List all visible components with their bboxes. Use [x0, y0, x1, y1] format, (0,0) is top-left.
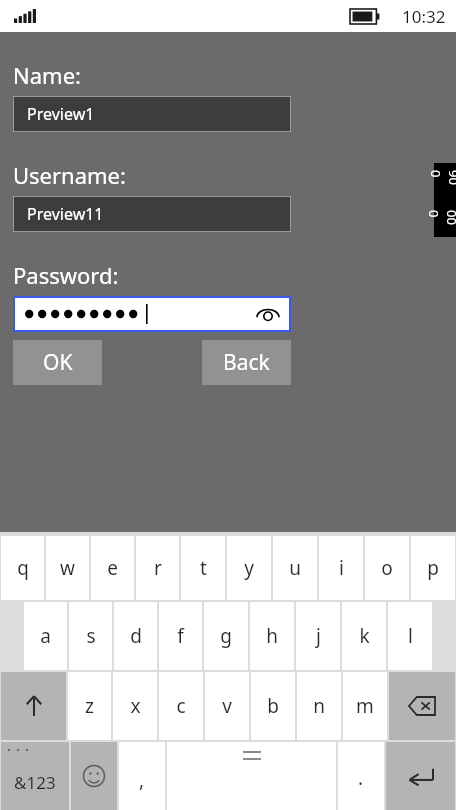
staticText: Username:	[13, 160, 126, 190]
button[interactable]: f	[159, 602, 202, 670]
staticText: x	[130, 693, 141, 719]
staticText: w	[60, 555, 75, 581]
button[interactable]: w	[46, 536, 89, 600]
button[interactable]: l	[388, 602, 432, 670]
staticText: m	[356, 693, 374, 719]
staticText: o	[381, 555, 393, 581]
staticText: 10:32	[402, 5, 446, 28]
staticText: d	[130, 623, 142, 649]
staticText: a	[40, 623, 51, 649]
button[interactable]: a	[24, 602, 67, 670]
staticText: f	[177, 623, 184, 649]
staticText: .	[358, 765, 364, 791]
staticText: ,	[139, 767, 145, 793]
button[interactable]: q	[1, 536, 44, 600]
button[interactable]: Show password	[15, 298, 289, 330]
button[interactable]: h	[250, 602, 294, 670]
staticText: z	[85, 693, 94, 719]
button[interactable]: s	[69, 602, 112, 670]
button[interactable]: &123	[1, 742, 69, 810]
staticText: i	[339, 555, 344, 581]
button[interactable]: Show password	[255, 301, 281, 327]
button[interactable]: Preview11	[14, 197, 290, 231]
button[interactable]: d	[114, 602, 157, 670]
staticText: v	[222, 693, 232, 719]
button[interactable]: n	[297, 672, 341, 740]
button[interactable]: OK	[13, 340, 102, 385]
button[interactable]: g	[204, 602, 248, 670]
button[interactable]: Back	[202, 340, 291, 385]
button[interactable]: j	[296, 602, 340, 670]
button[interactable]: c	[159, 672, 203, 740]
button[interactable]: Shift	[1, 672, 66, 740]
button[interactable]: Backspace	[389, 672, 455, 740]
button[interactable]: Space	[167, 742, 336, 810]
button[interactable]: m	[343, 672, 387, 740]
staticText: t	[200, 555, 207, 581]
button[interactable]: Emoji	[71, 742, 117, 810]
button[interactable]: x	[113, 672, 157, 740]
staticText: OK	[43, 348, 73, 377]
button[interactable]: Preview1	[14, 97, 290, 131]
staticText: g	[220, 623, 232, 649]
button[interactable]: y	[227, 536, 271, 600]
staticText: q	[17, 555, 29, 581]
button[interactable]: p	[411, 536, 455, 600]
staticText: &123	[14, 771, 56, 794]
staticText: Preview1	[27, 103, 95, 125]
staticText: Back	[223, 348, 270, 377]
staticText: e	[107, 555, 118, 581]
staticText: u	[289, 555, 301, 581]
staticText: r	[154, 555, 162, 581]
staticText: s	[86, 623, 96, 649]
button[interactable]: r	[136, 536, 179, 600]
staticText: b	[267, 693, 279, 719]
staticText: n	[313, 693, 325, 719]
button[interactable]: e	[91, 536, 134, 600]
button[interactable]: Enter	[386, 742, 455, 810]
staticText: y	[244, 555, 254, 581]
button[interactable]: o	[365, 536, 409, 600]
staticText: k	[359, 623, 370, 649]
staticText: Password:	[13, 260, 119, 290]
button[interactable]: u	[273, 536, 317, 600]
button[interactable]: i	[319, 536, 363, 600]
staticText: j	[316, 623, 321, 649]
staticText: 000	[429, 210, 456, 232]
button[interactable]: v	[205, 672, 249, 740]
staticText: l	[408, 623, 413, 649]
button[interactable]: .	[338, 742, 384, 810]
button[interactable]: ,	[119, 742, 165, 810]
staticText: Preview11	[27, 203, 104, 225]
staticText: p	[427, 555, 439, 581]
staticText: h	[266, 623, 278, 649]
button[interactable]: k	[342, 602, 386, 670]
button[interactable]: b	[251, 672, 295, 740]
staticText: 900	[427, 170, 456, 192]
staticText: c	[176, 693, 186, 719]
button[interactable]: z	[68, 672, 111, 740]
button[interactable]: t	[181, 536, 225, 600]
staticText: Name:	[13, 60, 81, 90]
